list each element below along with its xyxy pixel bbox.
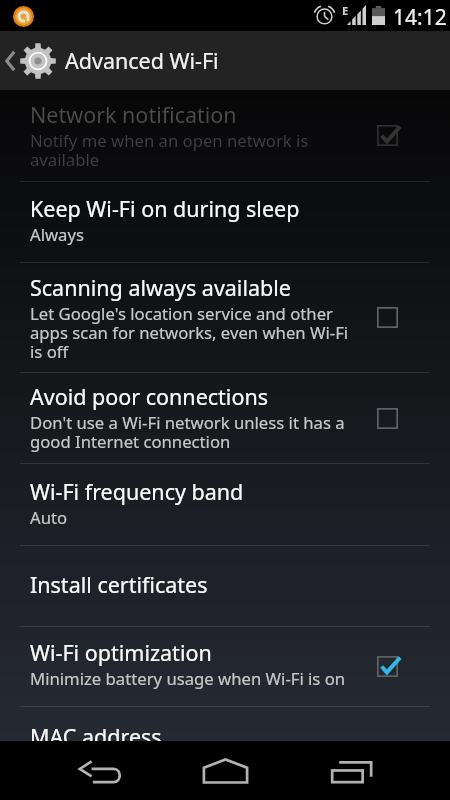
staticText: Minimize battery usage when Wi-Fi is on	[30, 667, 346, 690]
button[interactable]: Back	[0, 741, 150, 800]
button[interactable]: Install certificates	[0, 546, 450, 626]
button[interactable]: Network notification	[0, 90, 450, 181]
button[interactable]: Avoid poor connections	[0, 373, 450, 463]
staticText: Let Google's location service and other …	[30, 302, 352, 362]
staticText: MAC address	[30, 722, 162, 741]
other: Navigate up	[5, 51, 15, 71]
button[interactable]: Scanning always available	[0, 263, 450, 372]
staticText: Wi-Fi frequency band	[30, 477, 244, 506]
staticText: Avoid poor connections	[30, 382, 268, 411]
button[interactable]: MAC address	[0, 707, 450, 741]
staticText: Notify me when an open network is availa…	[30, 129, 352, 170]
button[interactable]: Home	[150, 741, 300, 800]
staticText: Scanning always available	[30, 273, 291, 302]
staticText: Advanced Wi-Fi	[65, 46, 219, 75]
staticText: 14:12	[393, 3, 447, 32]
staticText: Keep Wi-Fi on during sleep	[30, 194, 300, 223]
staticText: Don't use a Wi-Fi network unless it has …	[30, 411, 352, 452]
staticText: Wi-Fi optimization	[30, 638, 212, 667]
staticText: E	[342, 3, 349, 18]
button[interactable]: Wi-Fi optimization	[0, 627, 450, 706]
button[interactable]: Navigate up	[0, 31, 450, 90]
staticText: Auto	[30, 506, 68, 529]
staticText: Install certificates	[30, 570, 208, 599]
button[interactable]: Keep Wi-Fi on during sleep	[0, 182, 450, 262]
button[interactable]: Recent apps	[300, 741, 450, 800]
button[interactable]: Wi-Fi frequency band	[0, 464, 450, 545]
staticText: Always	[30, 223, 84, 246]
staticText: Network notification	[30, 100, 237, 129]
